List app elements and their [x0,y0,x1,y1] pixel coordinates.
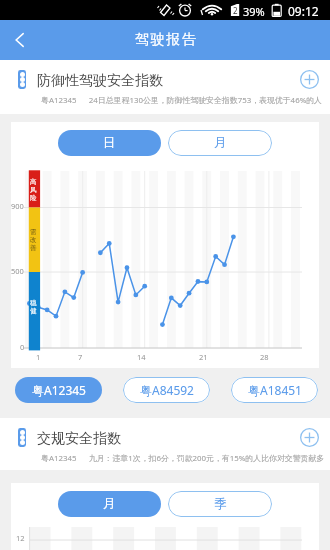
staticText: 7 [78,352,83,362]
button[interactable]: Add [298,426,320,448]
staticText: 1 [36,352,41,362]
staticText: 稳 [30,299,37,307]
staticText: 险 [30,194,37,202]
staticText: 0 [20,342,25,352]
staticText: 14 [137,352,146,362]
staticText: 高 [30,178,37,186]
button[interactable]: 季 [168,491,272,517]
staticText: 900 [11,201,24,211]
button[interactable]: 月 [58,491,161,517]
staticText: 21 [199,352,208,362]
staticText: 改 [30,236,37,244]
staticText: 粤A12345 [32,382,86,398]
staticText: 日 [103,135,116,151]
staticText: 粤A12345 九月：违章1次，扣6分，罚款200元，有15%的人比你对交警贡献… [41,453,325,464]
staticText: 粤A12345 24日总里程130公里，防御性驾驶安全指数753，表现优于46%… [41,95,322,106]
staticText: 月 [214,135,227,151]
staticText: 健 [30,307,37,315]
staticText: 善 [30,244,37,252]
staticText: 需 [30,228,37,236]
staticText: 季 [214,496,227,512]
staticText: 12 [16,533,25,543]
staticText: 交规安全指数 [37,430,121,448]
staticText: 风 [30,186,37,194]
staticText: 粤A18451 [248,382,302,398]
button[interactable]: Add [298,68,320,90]
staticText: 500 [11,266,24,276]
staticText: 防御性驾驶安全指数 [37,72,163,90]
button[interactable]: Back [0,20,40,60]
staticText: 28 [260,352,269,362]
staticText: 驾驶报告 [135,31,198,49]
staticText: 09:12 [288,3,319,19]
button[interactable]: 粤A18451 [231,377,318,403]
staticText: 粤A84592 [140,382,194,398]
button[interactable]: 月 [168,130,272,156]
button[interactable]: 粤A12345 [15,377,102,403]
button[interactable]: 日 [58,130,161,156]
staticText: 月 [103,496,116,512]
button[interactable]: 粤A84592 [123,377,210,403]
staticText: 39% [243,4,265,19]
staticText: 2 [233,5,238,16]
